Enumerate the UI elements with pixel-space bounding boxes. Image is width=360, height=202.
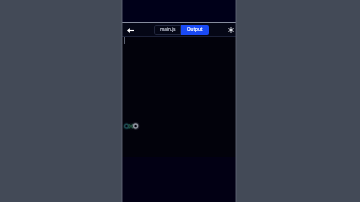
button[interactable]: main.js: [154, 25, 181, 35]
button[interactable]: Output: [181, 25, 209, 35]
button[interactable]: Settings: [224, 23, 238, 37]
button[interactable]: Back: [123, 23, 137, 37]
staticText: main.js: [160, 26, 176, 32]
staticText: Output: [187, 26, 203, 32]
